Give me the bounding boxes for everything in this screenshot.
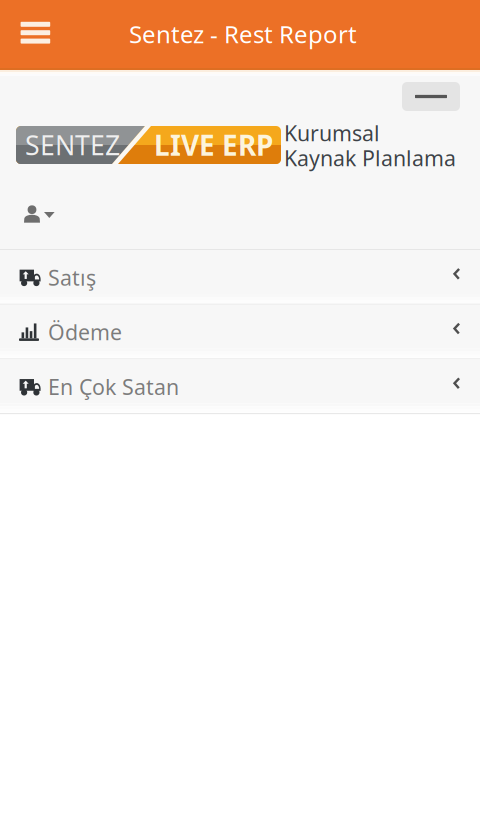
button[interactable]: Collapse [402, 82, 460, 111]
button[interactable]: Menu [0, 2, 64, 70]
staticText: SENTEZ [25, 127, 120, 163]
staticText: LIVE ERP [154, 126, 273, 164]
button[interactable]: En Çok Satan [0, 359, 480, 414]
button[interactable]: User menu [18, 199, 78, 229]
staticText: En Çok Satan [48, 373, 179, 401]
staticText: Sentez - Rest Report [129, 18, 357, 50]
staticText: Kurumsal [284, 119, 380, 147]
staticText: Ödeme [48, 318, 122, 346]
staticText: Kaynak Planlama [284, 144, 456, 172]
staticText: Satış [48, 263, 96, 291]
button[interactable]: Ödeme [0, 305, 480, 359]
button[interactable]: Satış [0, 250, 480, 305]
